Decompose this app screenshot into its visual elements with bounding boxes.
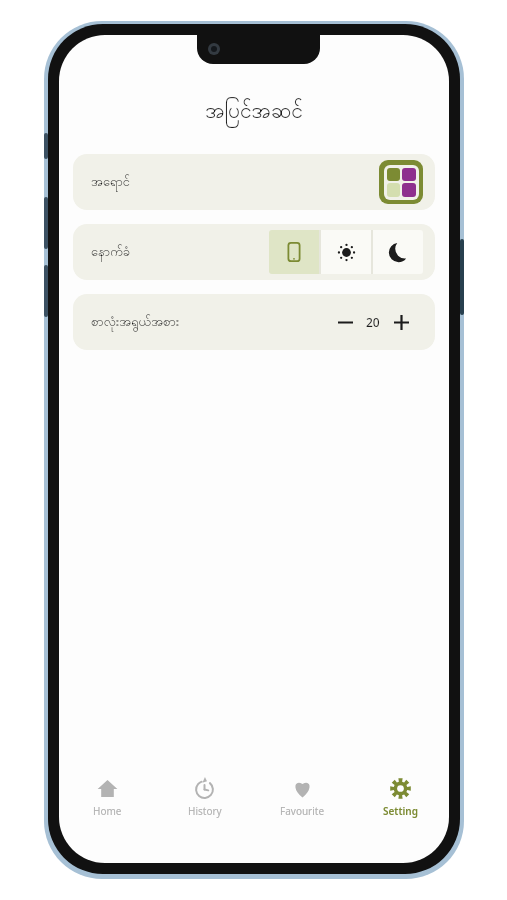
- staticText: အပြင်အဆင်: [205, 97, 303, 128]
- button[interactable]: Home: [59, 771, 156, 825]
- staticText: အရောင်: [91, 173, 131, 192]
- button[interactable]: Light theme: [321, 230, 371, 274]
- staticText: Setting: [383, 804, 418, 818]
- button[interactable]: Decrease font size: [331, 308, 359, 336]
- button[interactable]: History: [156, 771, 253, 825]
- button[interactable]: နောက်ခံ: [73, 224, 435, 280]
- button[interactable]: အရောင်: [73, 154, 435, 210]
- staticText: Home: [93, 804, 122, 818]
- button[interactable]: Dark theme: [373, 230, 423, 274]
- staticText: 20: [366, 314, 380, 330]
- staticText: History: [188, 804, 222, 818]
- button[interactable]: Increase font size: [387, 308, 415, 336]
- staticText: နောက်ခံ: [91, 243, 131, 262]
- button[interactable]: System theme: [269, 230, 319, 274]
- button[interactable]: Colour theme: [379, 160, 423, 204]
- staticText: စာလုံးအရွယ်အစား: [91, 313, 180, 332]
- staticText: Favourite: [280, 804, 325, 818]
- button[interactable]: Favourite: [253, 771, 351, 825]
- button[interactable]: စာလုံးအရွယ်အစား: [73, 294, 435, 350]
- button[interactable]: Setting: [351, 771, 449, 825]
